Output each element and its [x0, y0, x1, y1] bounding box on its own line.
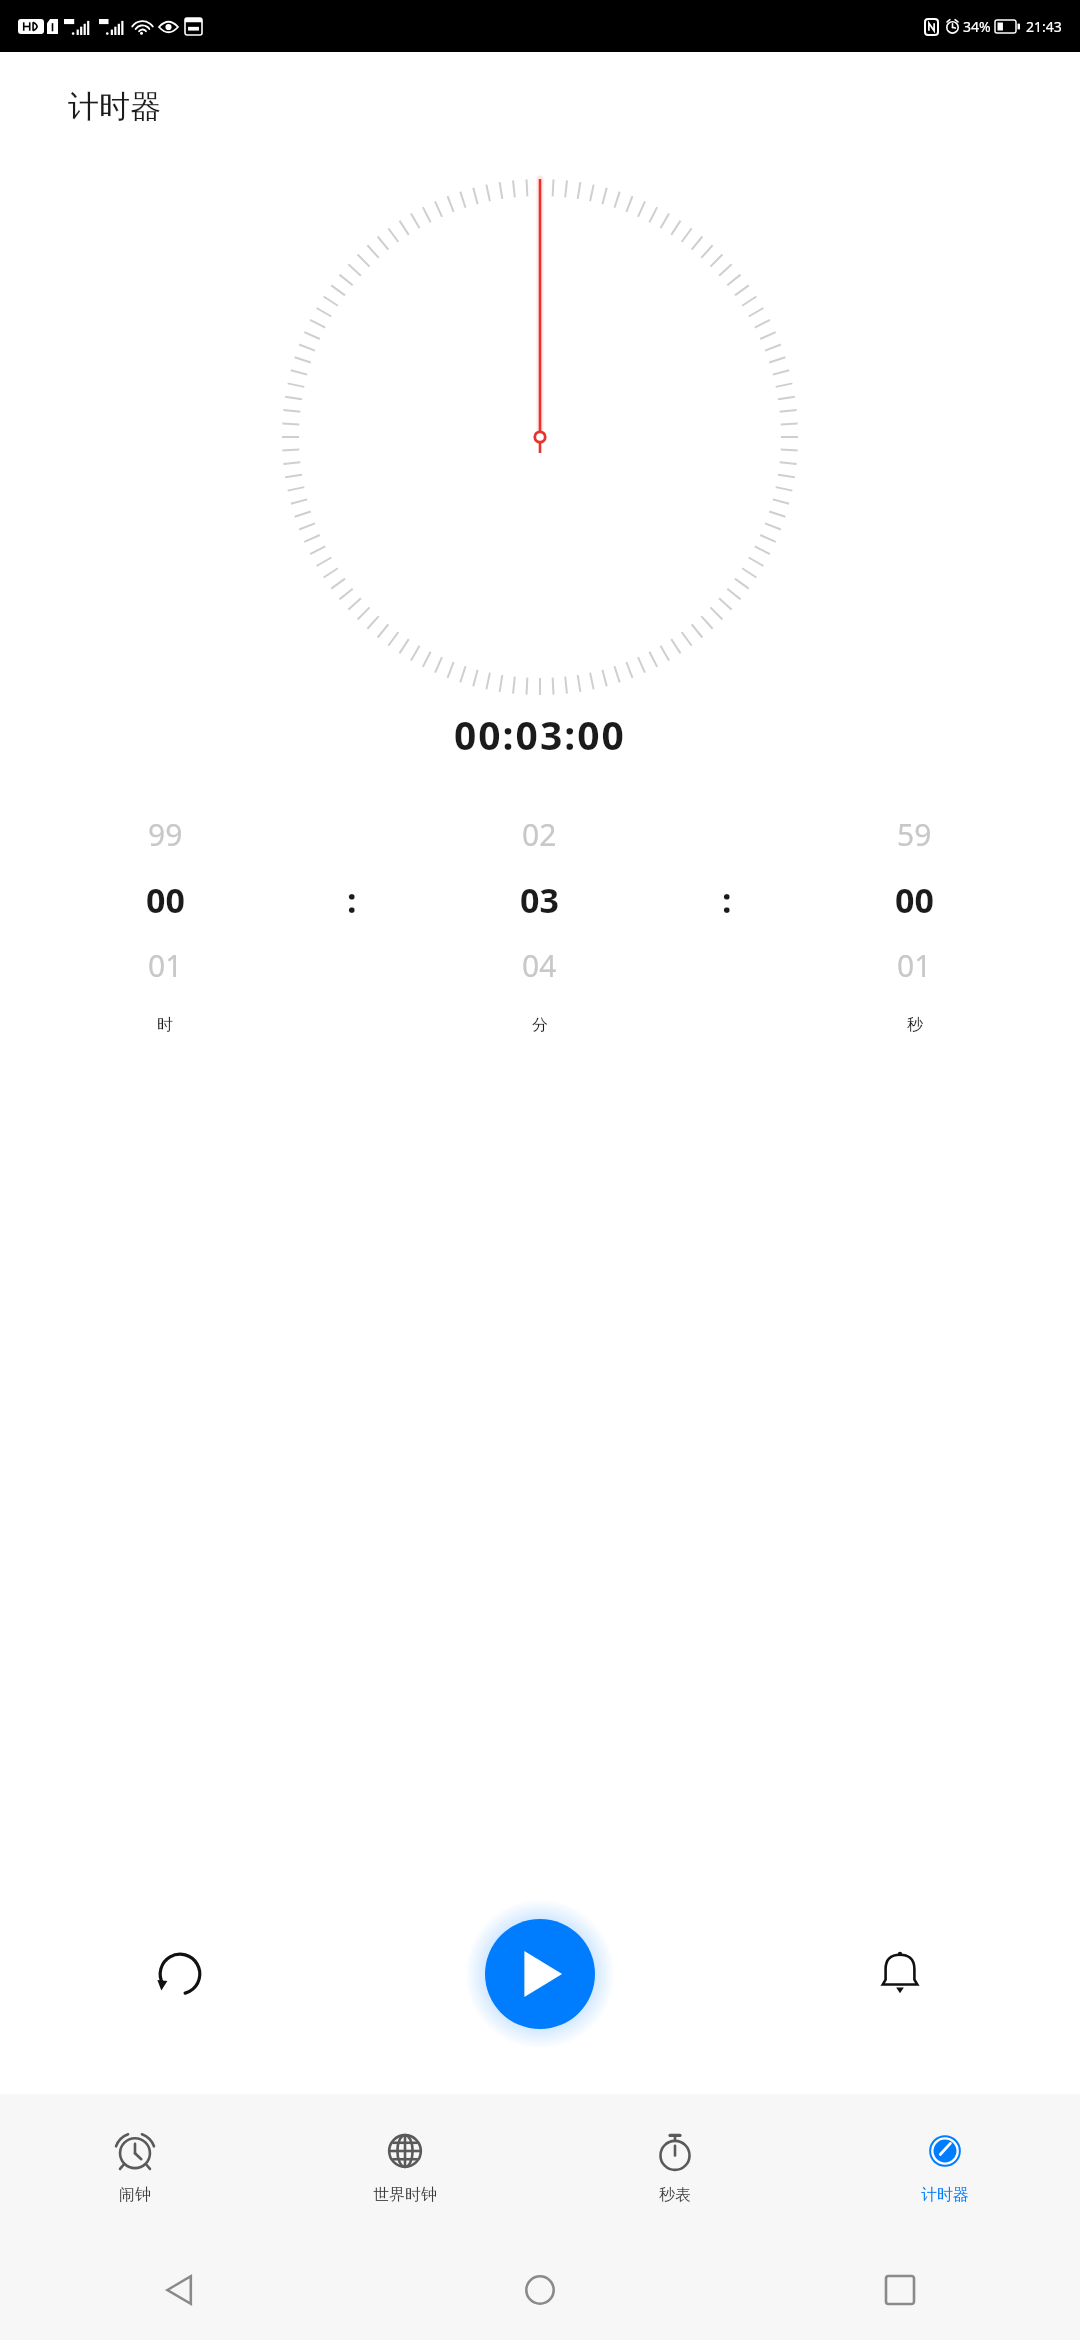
staticText: 99: [148, 814, 183, 855]
staticText: 00: [895, 877, 934, 923]
staticText: 计时器: [68, 87, 161, 126]
staticText: 时: [157, 1015, 173, 1035]
button[interactable]: 99: [0, 795, 330, 1005]
staticText: 秒: [907, 1015, 923, 1035]
staticText: 02: [522, 814, 557, 855]
button[interactable]: Start: [485, 1919, 595, 2029]
button[interactable]: 世界时钟: [270, 2094, 540, 2240]
staticText: 00: [146, 877, 185, 923]
button[interactable]: 秒表: [540, 2094, 810, 2240]
staticText: 秒表: [659, 2185, 691, 2205]
staticText: 分: [532, 1015, 548, 1035]
button[interactable]: 02: [374, 795, 705, 1005]
staticText: 00:03:00: [454, 708, 626, 761]
staticText: 34%: [963, 17, 991, 36]
staticText: 59: [897, 814, 932, 855]
staticText: 01: [897, 945, 932, 986]
button[interactable]: 闹钟: [0, 2094, 270, 2240]
button[interactable]: Home: [504, 2254, 576, 2326]
staticText: 03: [520, 877, 559, 923]
staticText: 计时器: [921, 2185, 969, 2205]
staticText: :: [722, 877, 732, 923]
button[interactable]: Back: [144, 2254, 216, 2326]
staticText: :: [347, 877, 357, 923]
button[interactable]: Reset: [137, 1931, 223, 2017]
staticText: 04: [522, 945, 557, 986]
button[interactable]: Recents: [864, 2254, 936, 2326]
staticText: 世界时钟: [373, 2185, 437, 2205]
button[interactable]: 计时器: [810, 2094, 1080, 2240]
staticText: 闹钟: [119, 2185, 151, 2205]
button[interactable]: Ringtone: [857, 1931, 943, 2017]
button[interactable]: 59: [749, 795, 1080, 1005]
staticText: 01: [148, 945, 183, 986]
staticText: 21:43: [1026, 17, 1062, 36]
